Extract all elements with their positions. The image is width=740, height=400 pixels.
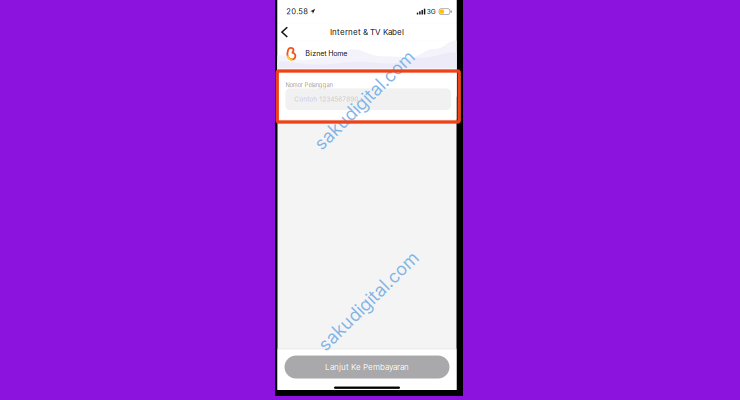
staticText: Lanjut Ke Pembayaran — [325, 362, 409, 372]
staticText: Internet & TV Kabel — [330, 27, 404, 37]
button[interactable]: Contoh 1234567890 — [285, 88, 451, 110]
staticText: 3G — [427, 8, 436, 16]
staticText: sakudigital.com — [298, 89, 431, 111]
staticText: Nomor Pelanggan — [285, 82, 332, 89]
staticText: sakudigital.com — [302, 290, 435, 312]
button[interactable]: Back — [277, 23, 294, 41]
button[interactable]: Lanjut Ke Pembayaran — [284, 356, 449, 379]
staticText: 20.58 — [286, 7, 308, 16]
staticText: Biznet Home — [305, 49, 347, 58]
staticText: Contoh 1234567890 — [294, 95, 358, 103]
